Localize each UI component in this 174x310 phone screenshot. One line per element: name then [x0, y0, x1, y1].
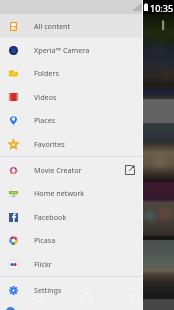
- staticText: Facebook: [34, 212, 67, 222]
- button[interactable]: Flickr: [0, 252, 142, 276]
- button[interactable]: Places: [0, 108, 142, 132]
- button[interactable]: Movie Creator: [0, 158, 142, 182]
- button[interactable]: All content: [0, 14, 142, 38]
- button[interactable]: Xperia™ Camera: [0, 38, 142, 62]
- button[interactable]: Back: [28, 292, 48, 310]
- staticText: 10:35: [150, 2, 174, 14]
- button[interactable]: Open external: [118, 158, 142, 182]
- button[interactable]: Picasa: [0, 228, 142, 252]
- button[interactable]: Facebook: [0, 205, 142, 229]
- button[interactable]: Home network: [0, 181, 142, 205]
- button[interactable]: Recent apps: [125, 292, 145, 310]
- staticText: Xperia™ Camera: [34, 45, 90, 55]
- staticText: Flickr: [34, 259, 52, 269]
- staticText: Folders: [34, 68, 59, 78]
- button[interactable]: Videos: [0, 85, 142, 109]
- button[interactable]: Folders: [0, 61, 142, 85]
- staticText: Home network: [34, 188, 85, 198]
- staticText: Favorites: [34, 139, 65, 149]
- staticText: Picasa: [34, 235, 56, 245]
- staticText: Settings: [34, 285, 62, 295]
- button[interactable]: Settings: [0, 278, 142, 302]
- staticText: All content: [34, 21, 71, 31]
- staticText: Places: [34, 115, 56, 125]
- other: Open external: [125, 165, 135, 175]
- button[interactable]: Favorites: [0, 132, 142, 156]
- staticText: Videos: [34, 92, 57, 102]
- staticText: Movie Creator: [34, 165, 82, 175]
